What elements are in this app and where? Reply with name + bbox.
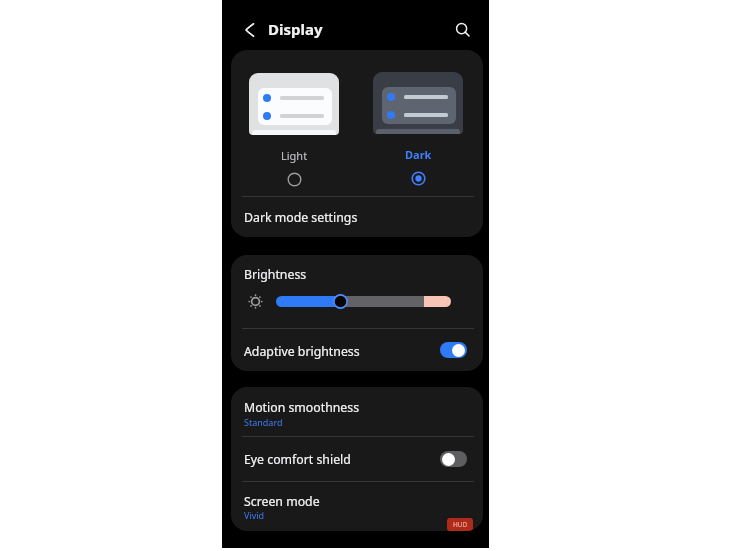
button[interactable]: Dark theme bbox=[373, 72, 463, 186]
button[interactable]: Switch off bbox=[440, 451, 467, 467]
staticText: Dark mode settings bbox=[244, 209, 358, 226]
button[interactable]: Switch on bbox=[440, 342, 467, 358]
staticText: Display bbox=[268, 19, 323, 39]
staticText: Motion smoothness bbox=[244, 399, 360, 416]
staticText: Adaptive brightness bbox=[244, 343, 360, 360]
staticText: Eye comfort shield bbox=[244, 451, 351, 468]
staticText: HUD bbox=[453, 520, 468, 529]
button[interactable]: Adaptive brightness bbox=[231, 329, 483, 370]
staticText: Standard bbox=[244, 416, 283, 428]
staticText: Screen mode bbox=[244, 493, 320, 510]
button[interactable]: Dark mode settings bbox=[231, 197, 483, 236]
button[interactable]: Motion smoothness bbox=[231, 387, 483, 436]
staticText: Light bbox=[281, 148, 308, 163]
button[interactable]: Search bbox=[451, 18, 474, 41]
staticText: Vivid bbox=[244, 509, 265, 521]
button[interactable]: Eye comfort shield bbox=[231, 437, 483, 481]
button[interactable]: Back bbox=[238, 18, 261, 41]
button[interactable]: Screen mode bbox=[231, 482, 483, 530]
staticText: Brightness bbox=[244, 266, 307, 283]
button[interactable]: Light theme bbox=[249, 73, 339, 187]
staticText: Dark bbox=[405, 147, 432, 162]
